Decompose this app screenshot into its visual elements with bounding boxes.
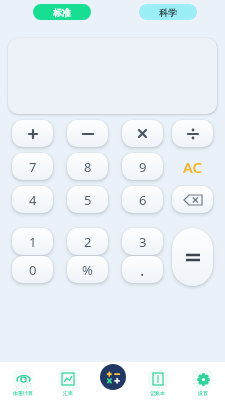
staticText: 7 (29, 158, 37, 176)
button[interactable]: Plus (12, 120, 53, 147)
staticText: 科学 (159, 7, 177, 18)
staticText: 记账本 (150, 390, 165, 396)
button[interactable]: % (67, 256, 108, 283)
staticText: % (82, 261, 93, 279)
button[interactable]: 4 (12, 186, 53, 213)
button[interactable]: Equals (172, 228, 213, 286)
button[interactable]: . (122, 256, 163, 283)
staticText: 3 (139, 233, 147, 251)
button[interactable]: Backspace (172, 186, 213, 213)
button[interactable]: 3 (122, 228, 163, 255)
staticText: 汇率 (63, 390, 73, 396)
button[interactable]: 7 (12, 153, 53, 180)
staticText: AC (183, 157, 203, 177)
button[interactable]: Divide (172, 120, 213, 147)
button[interactable]: 0 (12, 256, 53, 283)
staticText: 5 (84, 191, 92, 209)
button[interactable]: AC (172, 153, 213, 180)
staticText: 0 (29, 261, 37, 279)
button[interactable]: 8 (67, 153, 108, 180)
button[interactable]: 5 (67, 186, 108, 213)
button[interactable]: 2 (67, 228, 108, 255)
button[interactable]: 1 (12, 228, 53, 255)
button[interactable]: Minus (67, 120, 108, 147)
staticText: 1 (29, 233, 37, 251)
button[interactable]: 标准 (33, 4, 91, 20)
button[interactable]: Calculator (100, 364, 126, 390)
button[interactable]: 设置 (180, 367, 225, 396)
staticText: 4 (29, 191, 37, 209)
staticText: 8 (84, 158, 92, 176)
button[interactable]: 科学 (139, 4, 197, 20)
staticText: 标准 (53, 7, 71, 18)
staticText: 9 (139, 158, 147, 176)
button[interactable]: 体重计算 (0, 367, 45, 396)
staticText: 体重计算 (13, 390, 33, 396)
button[interactable]: 记账本 (135, 367, 180, 396)
button[interactable]: 6 (122, 186, 163, 213)
staticText: 6 (139, 191, 147, 209)
staticText: 2 (84, 233, 92, 251)
button[interactable]: Multiply (122, 120, 163, 147)
button[interactable]: 汇率 (45, 367, 90, 396)
staticText: 设置 (198, 390, 208, 396)
button[interactable]: 9 (122, 153, 163, 180)
staticText: . (140, 259, 145, 281)
